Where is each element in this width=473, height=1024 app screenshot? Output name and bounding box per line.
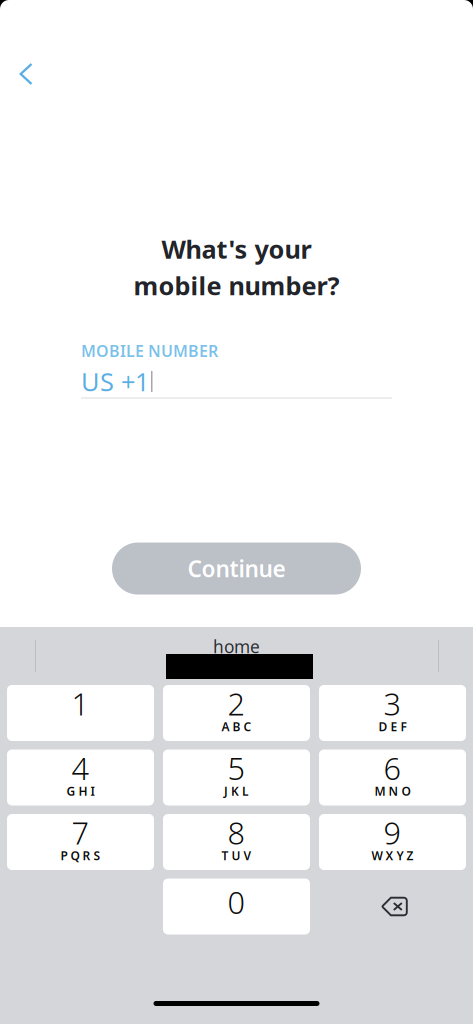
staticText: 4: [71, 748, 89, 788]
staticText: MOBILE NUMBER: [81, 340, 218, 361]
button[interactable]: Continue: [112, 542, 361, 594]
staticText: 8: [227, 812, 245, 853]
staticText: A B C: [221, 718, 251, 734]
button[interactable]: 1: [7, 685, 154, 741]
staticText: M N O: [374, 783, 410, 799]
button[interactable]: 9: [319, 814, 466, 870]
staticText: T U V: [221, 847, 251, 863]
staticText: 9: [383, 812, 401, 853]
staticText: mobile number?: [133, 269, 339, 302]
staticText: 1: [71, 683, 89, 724]
staticText: J K L: [224, 783, 249, 799]
button[interactable]: 6: [319, 749, 466, 805]
button[interactable]: 7: [7, 814, 154, 870]
button[interactable]: 8: [163, 814, 310, 870]
button[interactable]: 5: [163, 749, 310, 805]
button[interactable]: Back: [4, 52, 48, 96]
staticText: What's your: [161, 232, 311, 266]
button[interactable]: 3: [319, 685, 466, 741]
staticText: 2: [227, 683, 245, 724]
staticText: G H I: [66, 783, 94, 799]
staticText: Continue: [187, 553, 285, 584]
staticText: 6: [383, 748, 401, 788]
staticText: home: [213, 635, 260, 658]
staticText: W X Y Z: [371, 847, 413, 863]
staticText: P Q R S: [60, 847, 100, 863]
button[interactable]: 4: [7, 749, 154, 805]
staticText: 5: [227, 748, 245, 788]
staticText: 3: [383, 683, 401, 724]
staticText: US +1: [81, 365, 149, 398]
button[interactable]: 0: [163, 878, 310, 934]
button[interactable]: Delete: [319, 878, 466, 934]
staticText: 7: [71, 812, 89, 853]
staticText: D E F: [378, 718, 406, 734]
staticText: 0: [227, 882, 245, 922]
button[interactable]: 2: [163, 685, 310, 741]
